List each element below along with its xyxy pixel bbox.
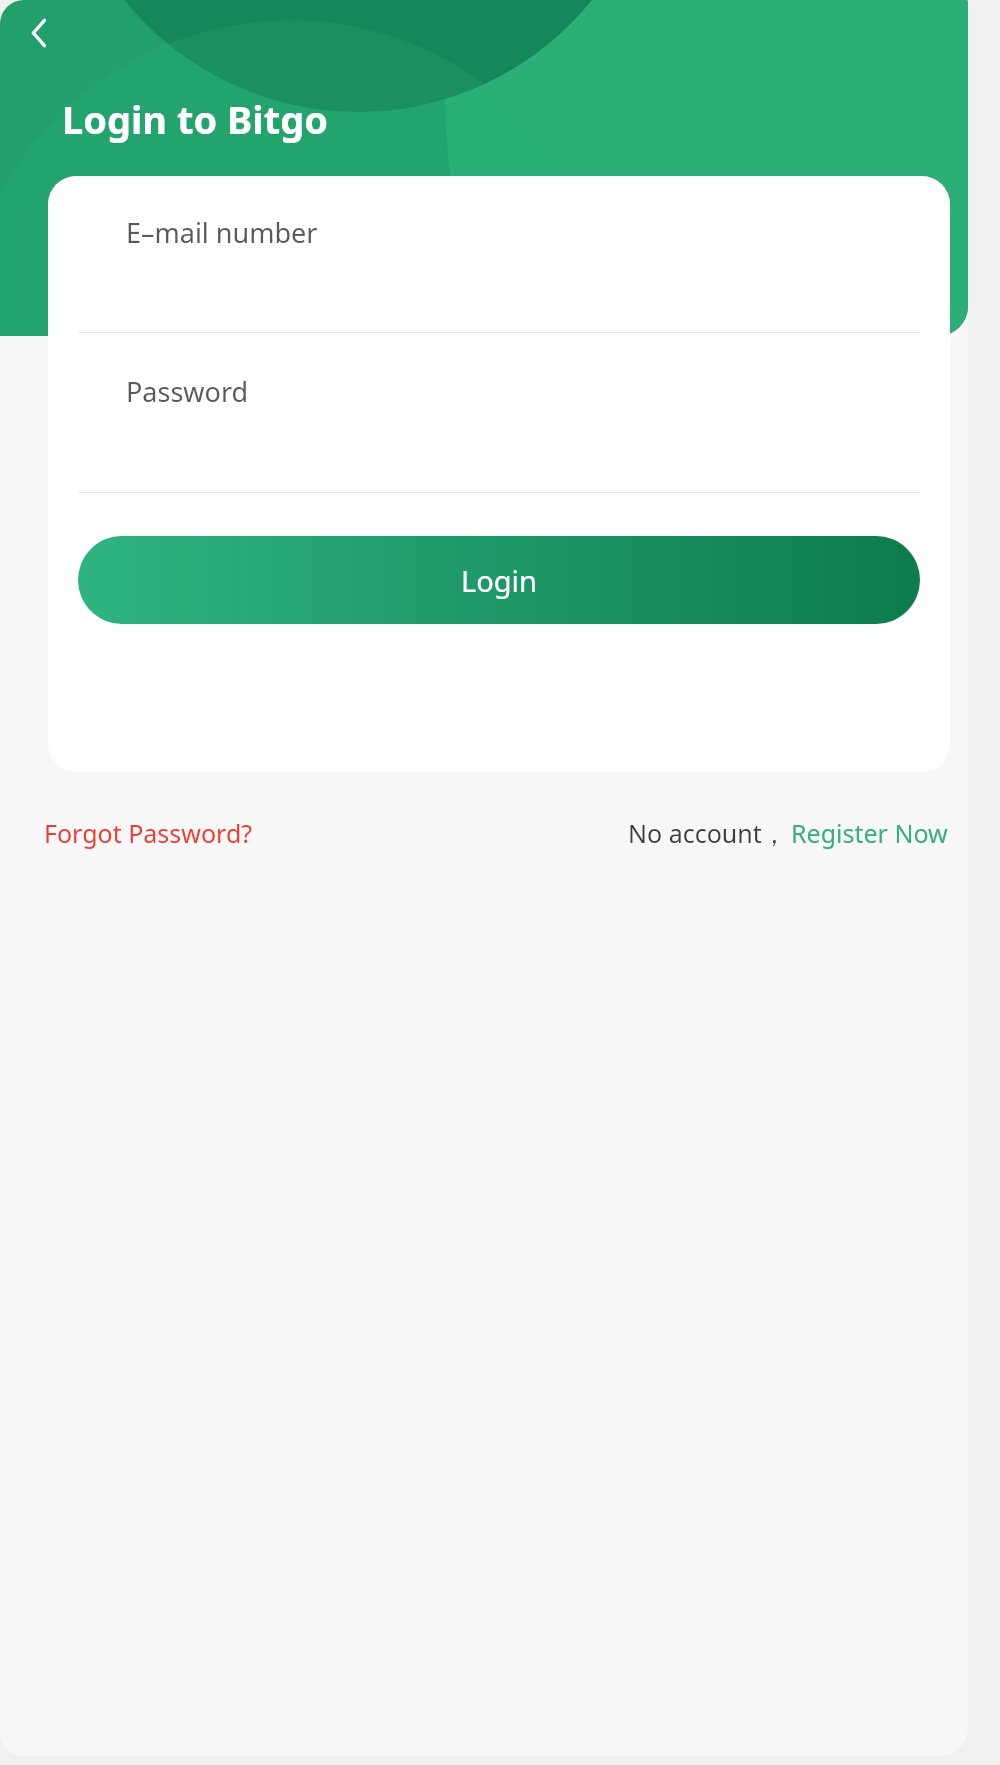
button[interactable]: Forgot Password? xyxy=(36,810,261,856)
button[interactable]: Back xyxy=(12,6,66,60)
staticText: Login to Bitgo xyxy=(62,93,328,145)
staticText: Forgot Password? xyxy=(44,816,253,850)
button[interactable]: Login xyxy=(78,536,920,624)
button[interactable]: Register Now xyxy=(787,816,952,850)
staticText: No account， xyxy=(628,816,787,850)
staticText: Password xyxy=(126,373,249,410)
staticText: Register Now xyxy=(791,816,948,850)
staticText: E–mail number xyxy=(126,214,318,251)
staticText: Login xyxy=(461,561,537,600)
